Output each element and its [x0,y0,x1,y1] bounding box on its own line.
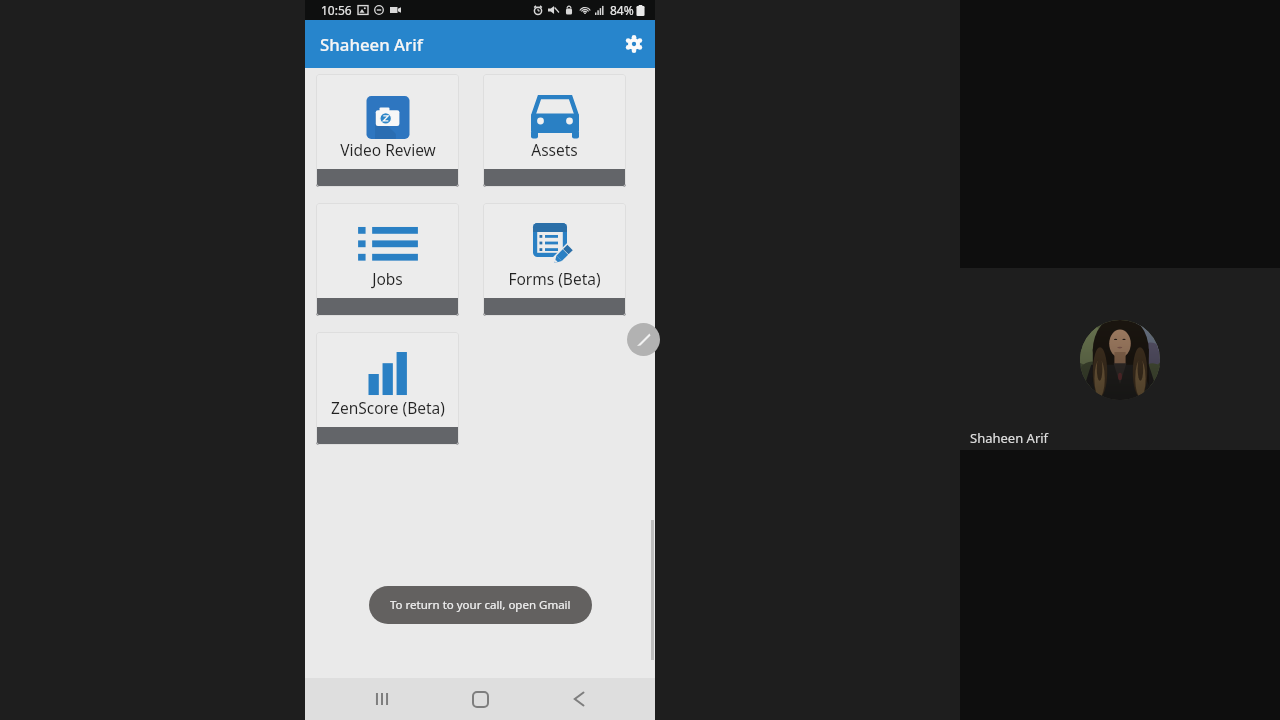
staticText: Forms (Beta) [508,268,601,289]
button[interactable]: Home [458,678,502,720]
button[interactable]: Settings [618,28,650,60]
button[interactable]: Video Review [316,74,459,187]
staticText: 84% [610,2,634,18]
staticText: Shaheen Arif [970,429,1049,447]
staticText: ZenScore (Beta) [331,397,445,418]
staticText: Assets [531,139,578,160]
button[interactable]: Forms (Beta) [483,203,626,316]
button[interactable]: Back [557,678,601,720]
button[interactable]: ZenScore (Beta) [316,332,459,445]
button[interactable]: Edit [627,323,660,356]
button[interactable]: Jobs [316,203,459,316]
button[interactable]: Recents [360,678,404,720]
staticText: Shaheen Arif [320,33,423,56]
staticText: Jobs [372,268,403,289]
button[interactable]: To return to your call, open Gmail [369,586,592,624]
staticText: Video Review [340,139,436,160]
staticText: To return to your call, open Gmail [390,597,571,613]
staticText: 10:56 [321,2,352,18]
button[interactable]: Assets [483,74,626,187]
